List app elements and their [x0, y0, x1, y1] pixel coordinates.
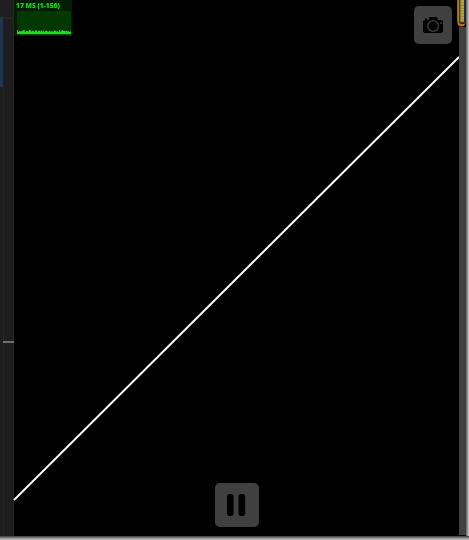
- button[interactable]: Pause: [215, 483, 259, 527]
- button[interactable]: Take photo: [414, 6, 452, 44]
- staticText: 17 MS (1-156): [16, 1, 60, 10]
